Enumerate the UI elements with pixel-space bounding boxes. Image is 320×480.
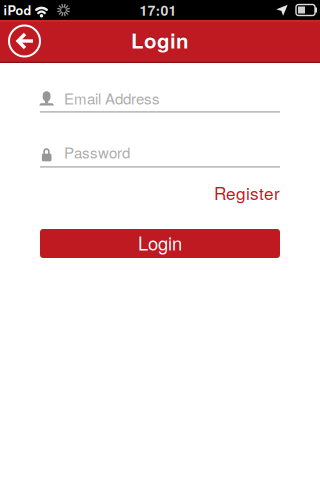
button[interactable]: Register xyxy=(40,180,280,204)
staticText: Login xyxy=(131,24,189,54)
staticText: Login xyxy=(138,229,182,256)
button[interactable]: Login xyxy=(40,229,280,258)
staticText: iPod xyxy=(3,1,31,19)
staticText: Login xyxy=(131,25,189,55)
button[interactable]: Back xyxy=(7,24,41,58)
staticText: Password xyxy=(64,141,130,163)
staticText: Email Address xyxy=(64,87,160,109)
staticText: 17:01 xyxy=(139,0,176,20)
staticText: Register xyxy=(214,180,280,205)
